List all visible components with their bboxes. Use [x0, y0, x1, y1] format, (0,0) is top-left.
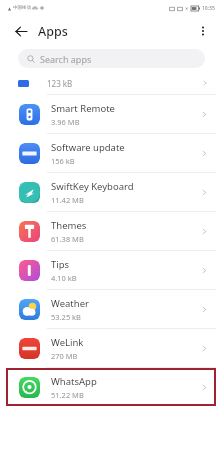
staticText: 156 kB	[51, 156, 75, 166]
button[interactable]: Weather	[0, 290, 222, 328]
button[interactable]: Themes	[0, 212, 222, 250]
staticText: Themes	[51, 219, 87, 232]
staticText: 51.22 MB	[51, 390, 84, 400]
staticText: ▲	[8, 6, 12, 11]
button[interactable]: WhatsApp	[6, 368, 216, 406]
staticText: 10:35	[202, 5, 215, 12]
button[interactable]: SwiftKey Keyboard	[0, 173, 222, 211]
staticText: 123 kB	[47, 78, 73, 89]
staticText: SwiftKey Keyboard	[51, 180, 134, 193]
staticText: Tips	[51, 258, 70, 271]
staticText: 53.25 kB	[51, 312, 81, 322]
staticText: 3.96 MB	[51, 117, 80, 127]
button[interactable]: 123 kB	[0, 72, 222, 94]
button[interactable]: Software update	[0, 134, 222, 172]
staticText: WhatsApp	[51, 375, 97, 388]
staticText: Smart Remote	[51, 102, 115, 115]
button[interactable]: Tips	[0, 251, 222, 289]
button[interactable]: Search apps	[18, 49, 205, 68]
button[interactable]: More options	[192, 20, 214, 42]
button[interactable]: WeLink	[0, 329, 222, 367]
staticText: WeLink	[51, 336, 84, 349]
staticText: Search apps	[40, 53, 92, 65]
staticText: 4.10 kB	[51, 273, 77, 283]
staticText: Weather	[51, 297, 89, 310]
staticText: 11.42 MB	[51, 195, 84, 205]
staticText: Apps	[38, 23, 68, 40]
staticText: 270 MB	[51, 351, 78, 361]
button[interactable]: Back	[10, 20, 32, 42]
staticText: Software update	[51, 141, 125, 154]
staticText: 61.38 MB	[51, 234, 84, 244]
button[interactable]: Smart Remote	[0, 95, 222, 133]
staticText: 中国移动	[13, 5, 31, 11]
staticText: ✕	[185, 6, 189, 11]
